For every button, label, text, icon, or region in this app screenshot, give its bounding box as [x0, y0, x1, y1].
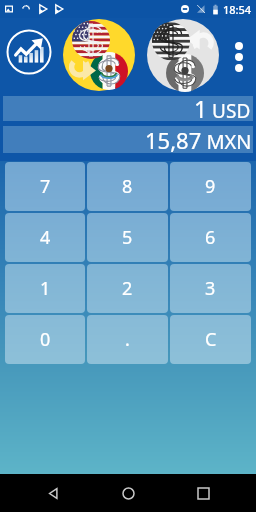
button[interactable]: Convert MXN to USD: [147, 19, 219, 91]
button[interactable]: 3: [170, 264, 251, 313]
staticText: 9: [205, 174, 216, 199]
button[interactable]: More options: [224, 18, 254, 96]
button[interactable]: 1: [5, 264, 85, 313]
button[interactable]: Currency chart: [5, 28, 53, 76]
button[interactable]: .: [87, 315, 168, 364]
button[interactable]: 6: [170, 213, 251, 262]
staticText: 1: [40, 276, 51, 301]
button[interactable]: 2: [87, 264, 168, 313]
button[interactable]: 7: [5, 162, 85, 211]
button[interactable]: 5: [87, 213, 168, 262]
button[interactable]: 1 USD: [3, 96, 253, 121]
staticText: 1 USD: [194, 93, 251, 124]
staticText: 8: [122, 174, 133, 199]
staticText: C: [205, 327, 217, 352]
button[interactable]: 15,87 MXN: [3, 126, 253, 153]
staticText: 0: [40, 327, 51, 352]
staticText: 5: [122, 225, 133, 250]
staticText: 6: [205, 225, 216, 250]
button[interactable]: Convert USD to MXN: [63, 19, 135, 91]
button[interactable]: 9: [170, 162, 251, 211]
staticText: 15,87 MXN: [145, 125, 252, 155]
staticText: 2: [122, 276, 133, 301]
button[interactable]: 0: [5, 315, 85, 364]
button[interactable]: Home: [106, 474, 150, 512]
staticText: 4: [40, 225, 51, 250]
button[interactable]: Back: [31, 474, 75, 512]
staticText: 3: [205, 276, 216, 301]
button[interactable]: 4: [5, 213, 85, 262]
button[interactable]: 8: [87, 162, 168, 211]
staticText: .: [125, 327, 130, 352]
staticText: 7: [40, 174, 51, 199]
button[interactable]: Recent apps: [181, 474, 225, 512]
button[interactable]: C: [170, 315, 251, 364]
staticText: 18:54: [223, 2, 252, 17]
